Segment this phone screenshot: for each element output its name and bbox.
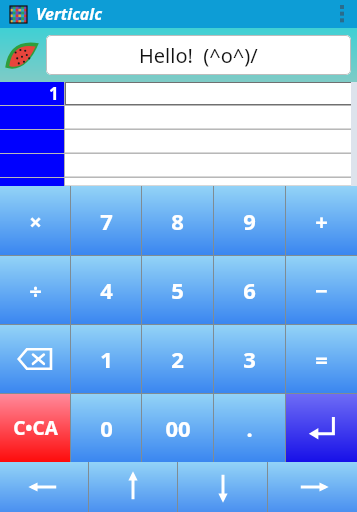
button[interactable]: 3 xyxy=(214,325,285,393)
button[interactable] xyxy=(65,130,357,153)
button[interactable]: 1 xyxy=(71,325,141,393)
button[interactable]: More options xyxy=(327,0,357,28)
button[interactable] xyxy=(65,106,357,129)
button[interactable]: 7 xyxy=(71,186,141,255)
staticText: 1 xyxy=(49,82,59,105)
staticText: 1 xyxy=(100,344,113,374)
button[interactable]: × xyxy=(0,186,70,255)
button[interactable]: 5 xyxy=(142,256,213,324)
staticText: 9 xyxy=(243,206,256,236)
staticText: 3 xyxy=(243,344,256,374)
button[interactable]: Backspace xyxy=(0,325,70,393)
button[interactable]: − xyxy=(286,256,357,324)
button[interactable]: 9 xyxy=(214,186,285,255)
button[interactable]: + xyxy=(286,186,357,255)
button[interactable]: 1 xyxy=(0,82,64,105)
button[interactable]: Hello! (^o^)/ xyxy=(46,35,351,75)
staticText: 0 xyxy=(100,413,113,443)
staticText: 8 xyxy=(171,206,184,236)
button[interactable] xyxy=(65,154,357,177)
staticText: 6 xyxy=(243,275,256,305)
button[interactable]: Down xyxy=(178,462,267,512)
button[interactable]: = xyxy=(286,325,357,393)
button[interactable]: C•CA xyxy=(0,394,70,462)
button[interactable] xyxy=(65,82,357,105)
staticText: 5 xyxy=(171,275,184,305)
button[interactable]: 0 xyxy=(71,394,141,462)
staticText: = xyxy=(315,344,328,374)
staticText: ÷ xyxy=(29,275,42,305)
staticText: C•CA xyxy=(13,415,58,441)
staticText: 2 xyxy=(171,344,184,374)
button[interactable]: 00 xyxy=(142,394,213,462)
button[interactable]: . xyxy=(214,394,285,462)
button[interactable]: Right xyxy=(268,462,357,512)
button[interactable]: 8 xyxy=(142,186,213,255)
staticText: − xyxy=(315,275,328,305)
staticText: 4 xyxy=(100,275,113,305)
staticText: 7 xyxy=(100,206,113,236)
staticText: Hello! (^o^)/ xyxy=(139,42,258,69)
staticText: + xyxy=(315,206,328,236)
staticText: × xyxy=(29,206,42,236)
button[interactable]: Left xyxy=(0,462,88,512)
button[interactable]: 4 xyxy=(71,256,141,324)
button[interactable]: 2 xyxy=(142,325,213,393)
button[interactable]: Enter xyxy=(286,394,357,462)
staticText: . xyxy=(246,413,253,443)
staticText: 00 xyxy=(165,413,191,443)
button[interactable]: 6 xyxy=(214,256,285,324)
button[interactable] xyxy=(65,178,357,186)
button[interactable]: ÷ xyxy=(0,256,70,324)
staticText: Verticalc xyxy=(36,3,102,25)
button[interactable]: Up xyxy=(89,462,177,512)
